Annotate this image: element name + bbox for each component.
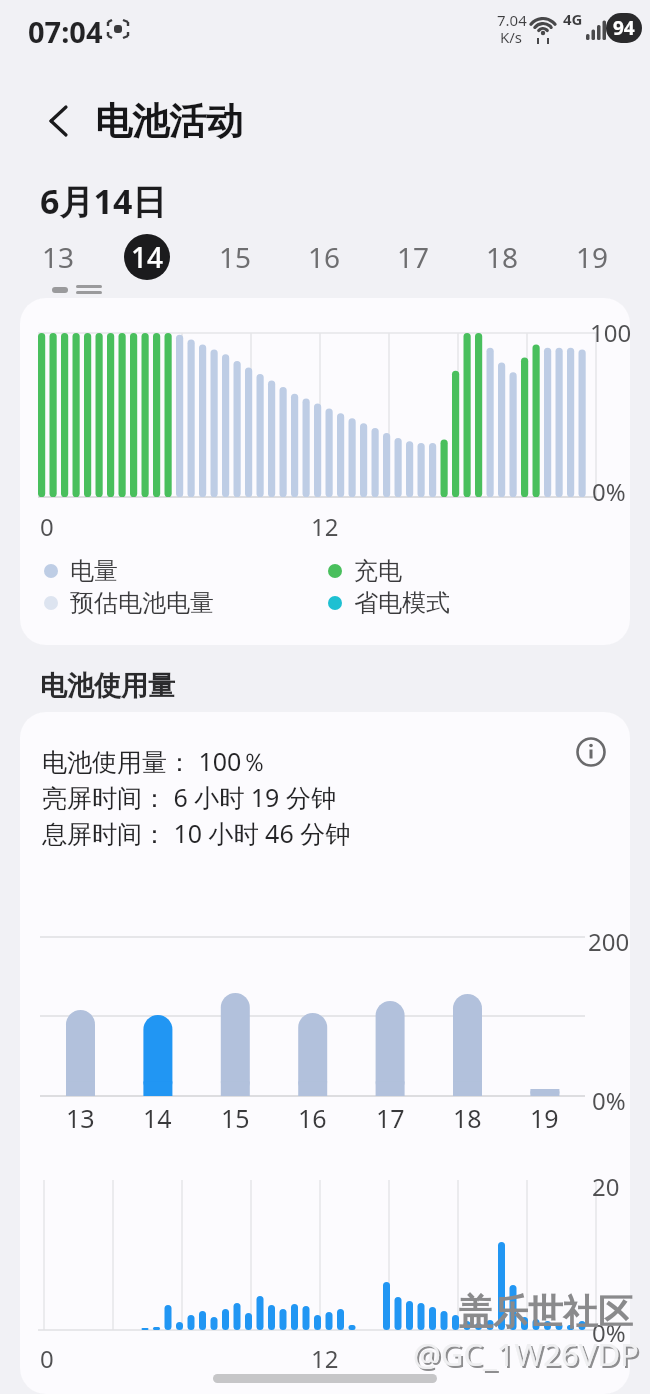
staticText: 省电模式	[354, 588, 450, 618]
staticText: 17	[397, 238, 430, 276]
staticText: 18	[486, 238, 519, 276]
staticText: 电池使用量	[40, 669, 175, 703]
staticText: 17	[376, 1101, 405, 1135]
staticText: 15	[219, 238, 252, 276]
staticText: 19	[530, 1101, 559, 1135]
staticText: 07:04	[28, 12, 103, 51]
staticText: 预估电池电量	[70, 588, 214, 618]
staticText: 200	[588, 925, 630, 958]
staticText: 0%	[592, 1316, 626, 1349]
staticText: 13	[42, 238, 75, 276]
button[interactable]: 16	[301, 234, 347, 280]
staticText: 0%	[592, 475, 626, 508]
button[interactable]	[20, 298, 630, 645]
button[interactable]	[576, 737, 606, 767]
staticText: 16	[298, 1101, 327, 1135]
button[interactable]: 17	[390, 234, 436, 280]
staticText: 电量	[70, 556, 118, 586]
staticText: 充电	[354, 556, 402, 586]
staticText: 14	[143, 1101, 172, 1135]
staticText: 13	[66, 1101, 95, 1135]
staticText: 12	[311, 1342, 339, 1375]
staticText: @GC_1W26VDP	[413, 1333, 639, 1375]
staticText: 亮屏时间： 6 小时 19 分钟	[42, 780, 336, 814]
staticText: 盖乐世社区	[458, 1290, 633, 1334]
staticText: 息屏时间： 10 小时 46 分钟	[42, 816, 351, 850]
staticText: 94	[613, 15, 635, 41]
staticText: K/s	[500, 27, 523, 47]
staticText: 15	[221, 1101, 250, 1135]
staticText: 0	[40, 1342, 54, 1375]
staticText: 20	[592, 1170, 620, 1203]
staticText: 电池活动	[95, 98, 243, 145]
staticText: 7.04	[497, 10, 527, 30]
staticText: 100	[590, 316, 632, 349]
button[interactable]: 19	[569, 234, 615, 280]
button[interactable]: 18	[479, 234, 525, 280]
staticText: 19	[576, 238, 609, 276]
button[interactable]	[44, 105, 76, 137]
button[interactable]	[20, 712, 630, 1394]
staticText: 4G	[563, 9, 583, 29]
staticText: 6月14日	[40, 178, 167, 224]
staticText: @GC_1W26VDP	[415, 1335, 641, 1377]
staticText: 12	[311, 510, 339, 543]
staticText: 0%	[592, 1084, 626, 1117]
button[interactable]: 14	[124, 234, 170, 280]
staticText: 0	[40, 510, 54, 543]
staticText: 16	[308, 238, 341, 276]
button[interactable]: 13	[35, 234, 81, 280]
staticText: 18	[453, 1101, 482, 1135]
staticText: 14	[131, 238, 164, 276]
button[interactable]: 15	[212, 234, 258, 280]
staticText: 电池使用量： 100％	[42, 744, 267, 778]
